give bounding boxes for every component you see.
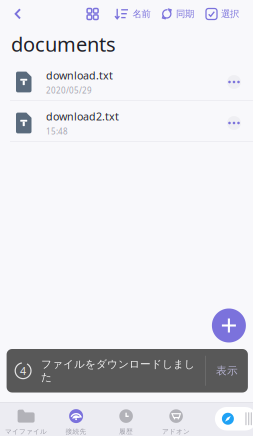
button[interactable]: download2.txt [0, 101, 253, 141]
button[interactable]: 履歴 [101, 403, 151, 436]
staticText: 4 [20, 364, 26, 378]
button[interactable]: 表示 [206, 349, 248, 392]
button[interactable]: 名前 [115, 2, 151, 26]
button[interactable]: Grid view [82, 2, 104, 26]
staticText: 名前 [133, 8, 151, 20]
staticText: マイファイル [5, 427, 47, 436]
staticText: 接続先 [66, 427, 87, 436]
staticText: 表示 [216, 364, 238, 377]
button[interactable]: 接続先 [51, 403, 101, 436]
button[interactable]: 選択 [206, 2, 239, 26]
staticText: download2.txt [46, 109, 119, 123]
staticText: ファイルをダウンロードしました [41, 358, 195, 384]
button[interactable]: マイファイル [1, 403, 51, 436]
staticText: 同期 [176, 8, 194, 20]
button[interactable]: download.txt [0, 60, 253, 100]
staticText: 2020/05/29 [46, 85, 92, 96]
button[interactable]: 同期 [162, 2, 194, 26]
staticText: 15:48 [46, 126, 68, 137]
staticText: 履歴 [119, 427, 133, 436]
button[interactable]: Add [212, 308, 246, 342]
staticText: 選択 [221, 8, 239, 20]
button[interactable]: Open Safari [215, 407, 253, 430]
button[interactable]: Back [0, 0, 36, 28]
staticText: download.txt [46, 68, 113, 82]
staticText: アドオン [162, 427, 190, 436]
staticText: documents [11, 31, 116, 57]
button[interactable]: アドオン [151, 403, 201, 436]
